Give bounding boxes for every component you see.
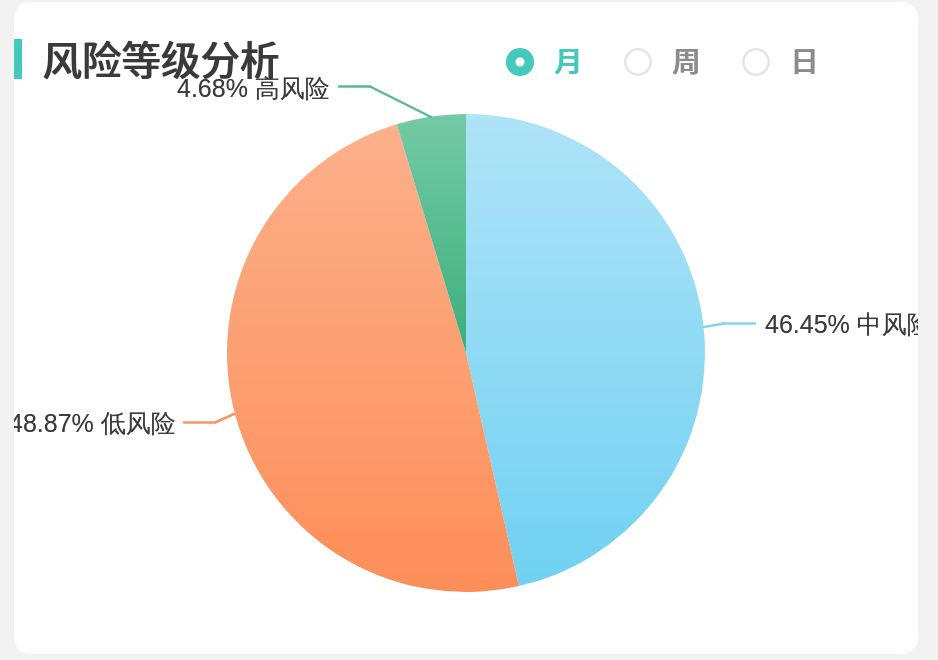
staticText: 48.87% 低风险 — [14, 408, 176, 439]
staticText: 4.68% 高风险 — [177, 73, 330, 104]
staticText: 日 — [791, 40, 820, 81]
staticText: 风险等级分析 — [42, 29, 279, 86]
button[interactable]: 高风险 4.68% — [227, 114, 705, 592]
button[interactable]: 按日统计 — [737, 39, 818, 85]
staticText: 月 — [555, 40, 584, 81]
staticText: 4.68% 高风险 — [177, 73, 330, 104]
button[interactable]: 中风险 46.45% — [227, 114, 705, 592]
staticText: 48.87% 低风险 — [14, 408, 176, 439]
button[interactable]: 按月统计，已选中 — [501, 39, 582, 85]
staticText: 46.45% 中风险 — [765, 309, 918, 340]
staticText: 周 — [673, 40, 702, 81]
button[interactable]: 按周统计 — [619, 39, 700, 85]
button[interactable]: 低风险 48.87% — [227, 114, 705, 592]
staticText: 月 — [554, 40, 583, 81]
staticText: 周 — [672, 40, 701, 81]
staticText: 日 — [790, 40, 819, 81]
staticText: 46.45% 中风险 — [765, 309, 918, 340]
staticText: 风险等级分析 — [43, 29, 280, 86]
